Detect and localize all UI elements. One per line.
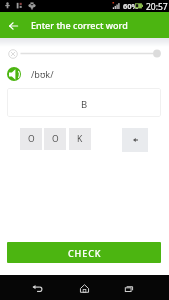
- staticText: 60%: [123, 1, 139, 11]
- button[interactable]: O: [44, 128, 66, 150]
- staticText: B: [81, 98, 88, 111]
- button[interactable]: Recent apps: [115, 276, 143, 300]
- button[interactable]: Back: [23, 276, 51, 300]
- button[interactable]: Play pronunciation: [7, 67, 21, 81]
- staticText: /bʊk/: [31, 68, 54, 80]
- button[interactable]: Stop: [8, 49, 18, 59]
- button[interactable]: Backspace: [122, 128, 148, 152]
- staticText: O: [28, 133, 35, 145]
- button[interactable]: Home: [70, 276, 98, 300]
- staticText: Enter the correct word: [31, 19, 128, 31]
- staticText: 20:57: [146, 1, 168, 13]
- staticText: CHECK: [68, 247, 102, 259]
- button[interactable]: B: [7, 88, 161, 117]
- button[interactable]: CHECK: [7, 242, 161, 263]
- button[interactable]: O: [20, 128, 42, 150]
- button[interactable]: Back: [4, 16, 23, 35]
- button[interactable]: K: [69, 128, 91, 150]
- staticText: K: [77, 133, 83, 145]
- staticText: O: [52, 133, 59, 145]
